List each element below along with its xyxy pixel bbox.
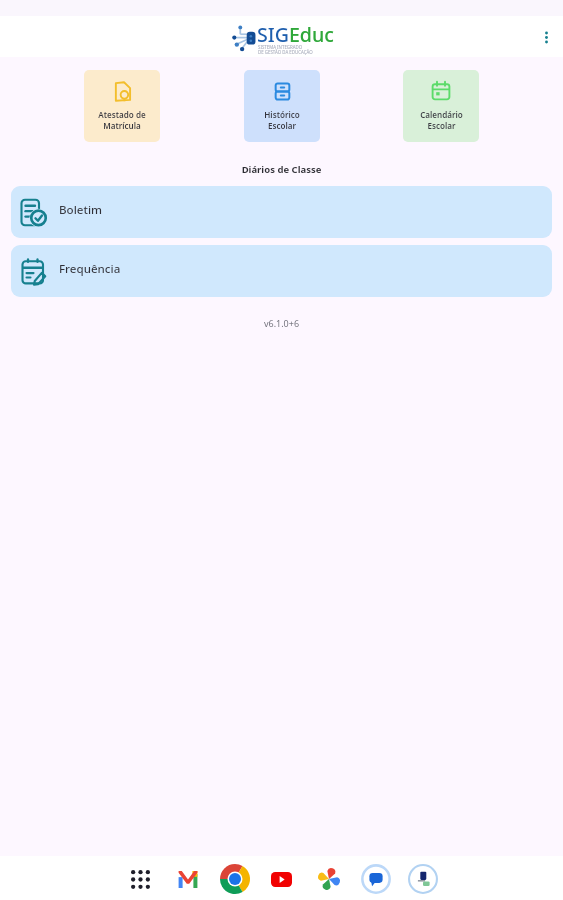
button[interactable]: Contacts	[399, 862, 446, 896]
staticText: Atestado de Matrícula	[98, 109, 146, 132]
button[interactable]: More options	[531, 22, 561, 52]
staticText: SIGEduc	[257, 21, 334, 48]
staticText: SISTEMA INTEGRADO DE GESTÃO DA EDUCAÇÃO	[258, 44, 313, 55]
button[interactable]: Histórico Escolar	[244, 70, 320, 142]
staticText: Frequência	[59, 261, 121, 277]
button[interactable]: Boletim	[11, 186, 552, 238]
button[interactable]: Atestado de Matrícula	[84, 70, 160, 142]
button[interactable]: YouTube	[258, 862, 305, 896]
button[interactable]: All apps	[117, 862, 164, 896]
staticText: Histórico Escolar	[264, 109, 300, 132]
staticText: Diários de Classe	[0, 163, 563, 176]
staticText: v6.1.0+6	[0, 317, 563, 329]
staticText: Calendário Escolar	[420, 109, 463, 132]
button[interactable]: Chrome	[211, 862, 258, 896]
button[interactable]: Messages	[352, 862, 399, 896]
button[interactable]: Gmail	[164, 862, 211, 896]
button[interactable]: Calendário Escolar	[403, 70, 479, 142]
staticText: Boletim	[59, 202, 103, 218]
button[interactable]: Frequência	[11, 245, 552, 297]
button[interactable]: Google Photos	[305, 862, 352, 896]
